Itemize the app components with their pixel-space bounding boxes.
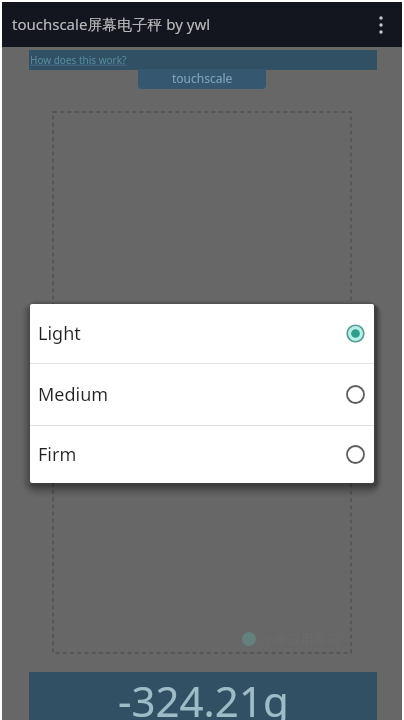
staticText: touchscale	[172, 70, 233, 86]
staticText: Firm	[38, 442, 77, 467]
staticText: Medium	[38, 382, 109, 407]
button[interactable]: Light	[30, 304, 374, 363]
staticText: Light	[38, 321, 81, 346]
button[interactable]: Medium	[30, 364, 374, 425]
staticText: -324.21g	[118, 672, 289, 720]
button[interactable]: More options	[364, 8, 398, 42]
button[interactable]: How does this work?	[30, 53, 127, 67]
staticText: touchscale屏幕电子秤 by ywl	[12, 14, 211, 34]
button[interactable]: Firm	[30, 426, 374, 483]
